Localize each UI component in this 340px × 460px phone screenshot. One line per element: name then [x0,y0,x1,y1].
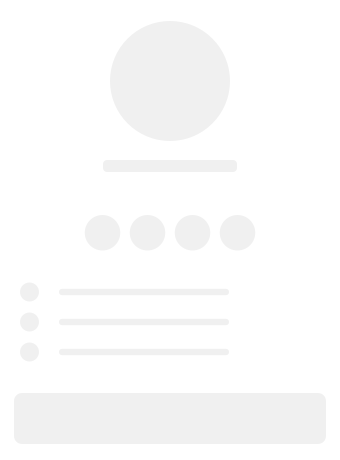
button[interactable]: List item [20,312,320,331]
button[interactable]: List item [20,282,320,301]
button[interactable]: Quick action 3 [175,215,210,250]
button[interactable]: Quick action 1 [85,215,120,250]
button[interactable]: List item [20,342,320,361]
button[interactable]: Quick action 4 [220,215,255,250]
button[interactable]: Quick action 2 [130,215,165,250]
